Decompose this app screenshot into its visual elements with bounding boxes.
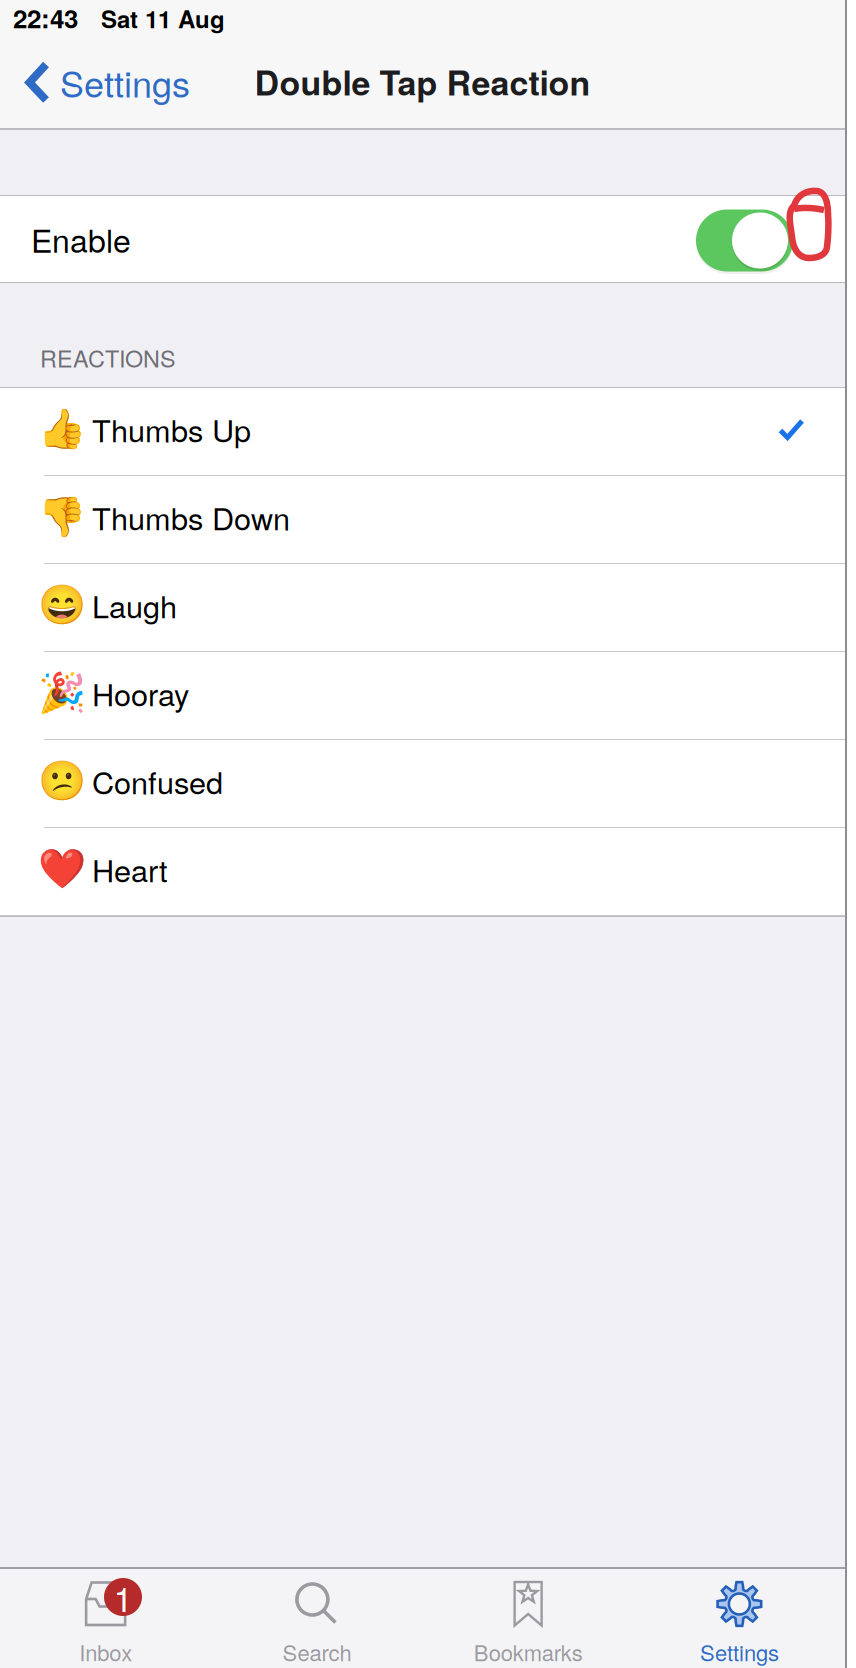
staticText: 🎉 — [38, 670, 86, 716]
staticText: 22:43 — [13, 0, 78, 36]
staticText: Inbox — [79, 1636, 132, 1667]
button[interactable]: Search — [211, 1569, 422, 1668]
staticText: Heart — [92, 847, 168, 891]
button[interactable]: Inbox — [0, 1569, 211, 1668]
button[interactable]: 👎 — [0, 476, 845, 564]
staticText: 👎 — [38, 494, 86, 540]
button[interactable]: Settings — [634, 1569, 845, 1668]
staticText: 1 — [113, 1572, 132, 1622]
button[interactable]: ❤️ — [0, 828, 845, 916]
staticText: Bookmarks — [474, 1636, 583, 1667]
staticText: Thumbs Down — [92, 495, 290, 539]
staticText: Search — [282, 1636, 351, 1667]
staticText: 😕 — [38, 758, 86, 804]
button[interactable]: 👍 — [0, 388, 845, 476]
button[interactable]: 😄 — [0, 564, 845, 652]
button[interactable]: 😕 — [0, 740, 845, 828]
staticText: Thumbs Up — [92, 407, 251, 451]
staticText: Enable — [31, 216, 131, 262]
staticText: 😄 — [38, 582, 86, 628]
button[interactable]: Settings — [0, 42, 208, 128]
staticText: Confused — [92, 759, 223, 803]
staticText: REACTIONS — [40, 341, 176, 374]
staticText: Double Tap Reaction — [254, 57, 590, 106]
staticText: 👍 — [38, 406, 86, 452]
button[interactable]: 🎉 — [0, 652, 845, 740]
button[interactable]: Enable — [0, 196, 845, 282]
button[interactable]: Bookmarks — [422, 1569, 634, 1668]
staticText: Laugh — [92, 583, 177, 627]
staticText: Settings — [700, 1636, 779, 1667]
staticText: Settings — [60, 56, 190, 108]
staticText: Sat 11 Aug — [101, 1, 225, 35]
staticText: ❤️ — [38, 846, 86, 892]
staticText: Hooray — [92, 671, 189, 715]
